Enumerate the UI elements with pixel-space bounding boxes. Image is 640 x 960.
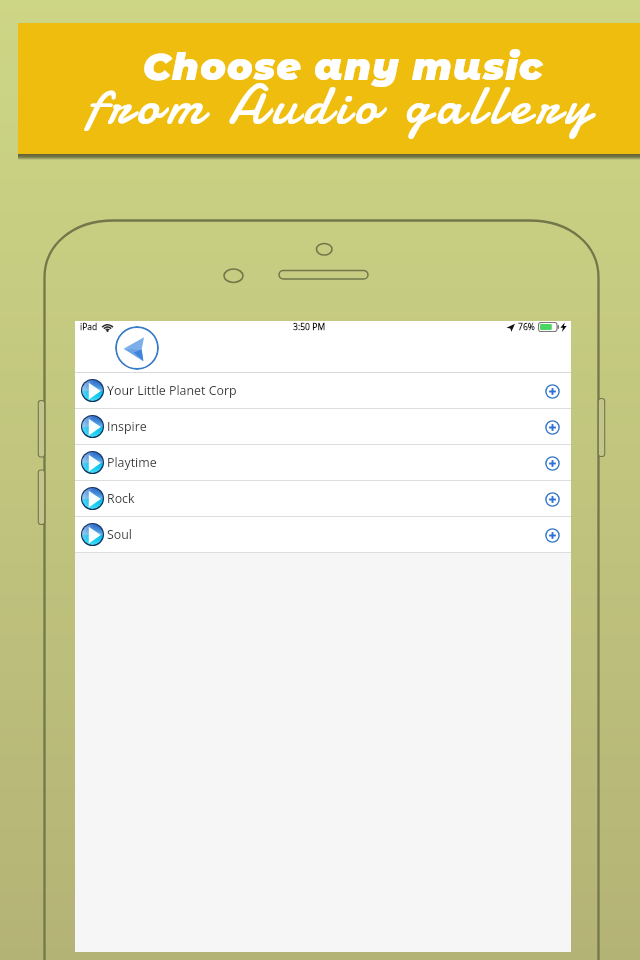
staticText: Soul (107, 526, 132, 543)
button[interactable]: Inspire (75, 409, 571, 444)
button[interactable]: Add to playlist (540, 379, 564, 403)
button[interactable]: Playtime (75, 445, 571, 480)
button[interactable]: Add to playlist (540, 415, 564, 439)
staticText: Playtime (107, 454, 157, 471)
staticText: from Audio gallery (31, 65, 640, 143)
staticText: 3:50 PM (293, 321, 326, 333)
staticText: 76% (518, 321, 535, 333)
button[interactable]: Soul (75, 517, 571, 552)
button[interactable]: Add to playlist (540, 451, 564, 475)
button[interactable]: Back (115, 326, 159, 370)
staticText: Inspire (107, 418, 147, 435)
button[interactable]: Add to playlist (540, 523, 564, 547)
staticText: Your Little Planet Corp (107, 382, 237, 399)
staticText: iPad (80, 321, 98, 333)
staticText: Rock (107, 490, 135, 507)
button[interactable]: Add to playlist (540, 487, 564, 511)
button[interactable]: Rock (75, 481, 571, 516)
button[interactable]: Your Little Planet Corp (75, 373, 571, 408)
staticText: Choose any music (32, 43, 640, 89)
